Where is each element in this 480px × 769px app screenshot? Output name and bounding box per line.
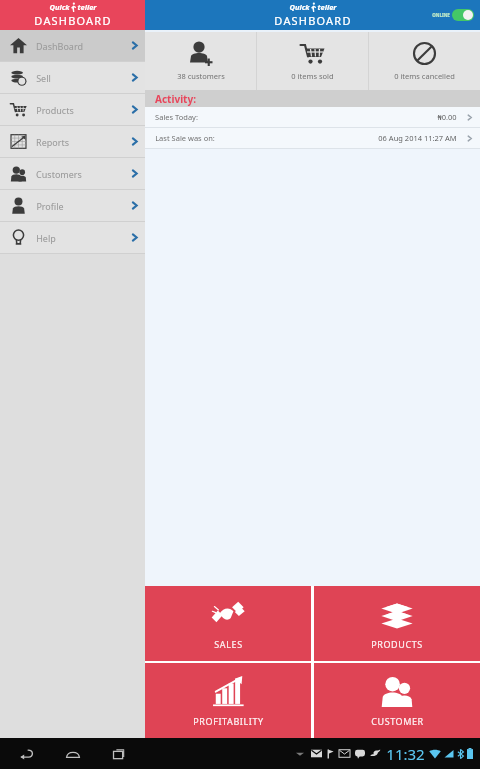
staticText: Help [36, 232, 56, 244]
button[interactable]: 0 items cancelled [369, 32, 480, 90]
staticText: Quick [289, 2, 310, 12]
staticText: teller [317, 2, 337, 12]
staticText: Last Sale was on: [155, 133, 215, 143]
staticText: Reports [36, 136, 69, 148]
button[interactable]: Products [0, 94, 145, 125]
button[interactable]: CUSTOMER [314, 663, 480, 738]
staticText: PROFITABILITY [193, 715, 264, 727]
staticText: SALES [214, 638, 243, 650]
staticText: teller [77, 2, 97, 12]
staticText: Activity: [155, 92, 196, 106]
button[interactable]: SALES [145, 586, 311, 661]
staticText: Products [36, 104, 74, 116]
button[interactable]: Home [60, 741, 86, 767]
button[interactable]: Sales Today: [145, 107, 480, 127]
button[interactable]: Customers [0, 158, 145, 189]
staticText: Sales Today: [155, 112, 198, 122]
staticText: DASHBOARD [274, 13, 352, 28]
staticText: ₦0.00 [437, 112, 457, 122]
button[interactable]: Back [14, 741, 40, 767]
staticText: Sell [36, 72, 51, 84]
button[interactable]: Help [0, 222, 145, 253]
staticText: 06 Aug 2014 11:27 AM [378, 133, 457, 143]
staticText: Quick [49, 2, 70, 12]
button[interactable]: Online toggle [432, 9, 474, 21]
staticText: 38 customers [177, 71, 225, 81]
staticText: 11:32 [386, 744, 425, 764]
staticText: 0 items sold [291, 71, 334, 81]
staticText: DASHBOARD [34, 13, 112, 28]
staticText: DashBoard [36, 40, 83, 52]
staticText: Profile [36, 200, 64, 212]
button[interactable]: Reports [0, 126, 145, 157]
button[interactable]: Last Sale was on: [145, 128, 480, 148]
button[interactable]: DashBoard [0, 30, 145, 61]
button[interactable]: Recents [106, 741, 132, 767]
button[interactable]: Sell [0, 62, 145, 93]
staticText: CUSTOMER [371, 715, 424, 727]
staticText: Customers [36, 168, 82, 180]
button[interactable]: PRODUCTS [314, 586, 480, 661]
staticText: 0 items cancelled [394, 71, 455, 81]
staticText: ONLINE [432, 12, 450, 18]
button[interactable]: Profile [0, 190, 145, 221]
button[interactable]: 38 customers [145, 32, 256, 90]
button[interactable]: 0 items sold [257, 32, 368, 90]
staticText: PRODUCTS [371, 638, 423, 650]
button[interactable]: PROFITABILITY [145, 663, 311, 738]
